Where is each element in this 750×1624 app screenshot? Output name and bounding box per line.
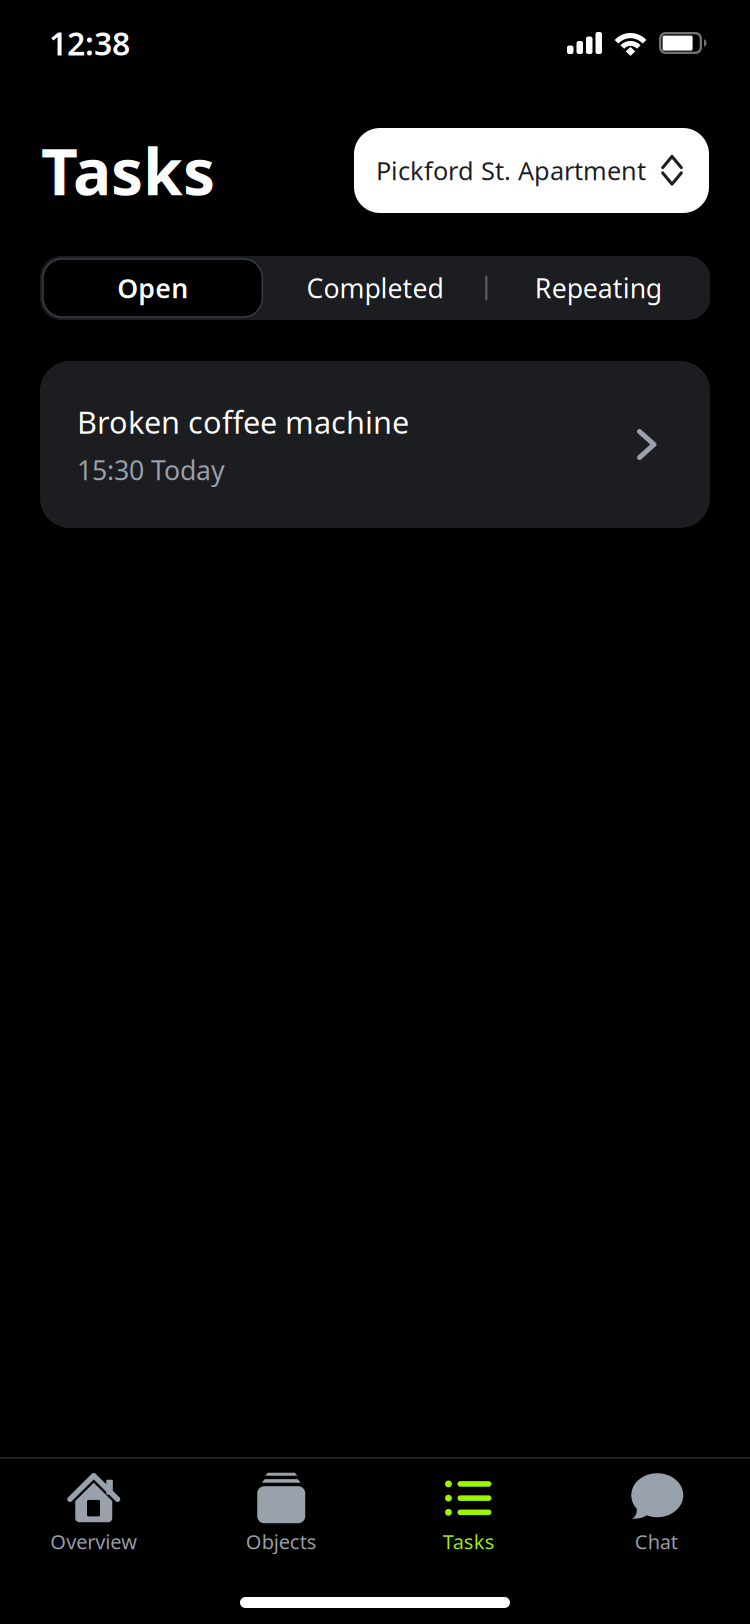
button[interactable]: Broken coffee machine (40, 361, 710, 528)
staticText: Objects (246, 1528, 317, 1555)
button[interactable]: Completed (263, 256, 487, 320)
staticText: Chat (635, 1528, 678, 1555)
staticText: Repeating (535, 270, 662, 306)
button[interactable]: Pickford St. Apartment (354, 128, 709, 213)
button[interactable]: Overview (0, 1462, 187, 1562)
button[interactable]: Chat (562, 1462, 750, 1562)
button[interactable]: Repeating (487, 256, 710, 320)
staticText: 12:38 (49, 22, 130, 64)
button[interactable]: Objects (187, 1462, 375, 1562)
staticText: 15:30 Today (77, 452, 225, 488)
button[interactable]: Open (40, 256, 263, 320)
staticText: Pickford St. Apartment (376, 154, 646, 187)
button[interactable]: Tasks (375, 1462, 562, 1562)
staticText: Tasks (41, 128, 215, 213)
staticText: Open (117, 270, 188, 306)
staticText: Completed (306, 270, 443, 306)
staticText: Broken coffee machine (77, 401, 409, 442)
staticText: Tasks (443, 1528, 495, 1555)
staticText: Overview (50, 1528, 137, 1555)
